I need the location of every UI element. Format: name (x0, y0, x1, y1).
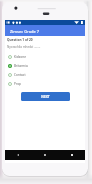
staticText: Britannia (14, 64, 28, 68)
button[interactable]: NEXT (21, 92, 70, 101)
button[interactable]: Prop (5, 79, 85, 88)
button[interactable]: Britannia (5, 61, 85, 70)
staticText: Kidzone (14, 55, 26, 59)
button[interactable]: Zimsec Grade 7 (5, 25, 85, 36)
staticText: Contact (14, 73, 26, 77)
staticText: Zimsec Grade 7 (10, 29, 39, 34)
staticText: Prop (14, 82, 22, 86)
button[interactable]: Back (5, 150, 31, 160)
button[interactable]: Home (31, 150, 58, 160)
staticText: Question 1 of 20 (7, 38, 33, 42)
staticText: NEXT (41, 95, 50, 99)
button[interactable]: Kidzone (5, 52, 85, 61)
button[interactable]: Recents (58, 150, 85, 160)
staticText: Nyorachila mhedzi …….. (7, 45, 41, 49)
button[interactable]: Contact (5, 70, 85, 79)
